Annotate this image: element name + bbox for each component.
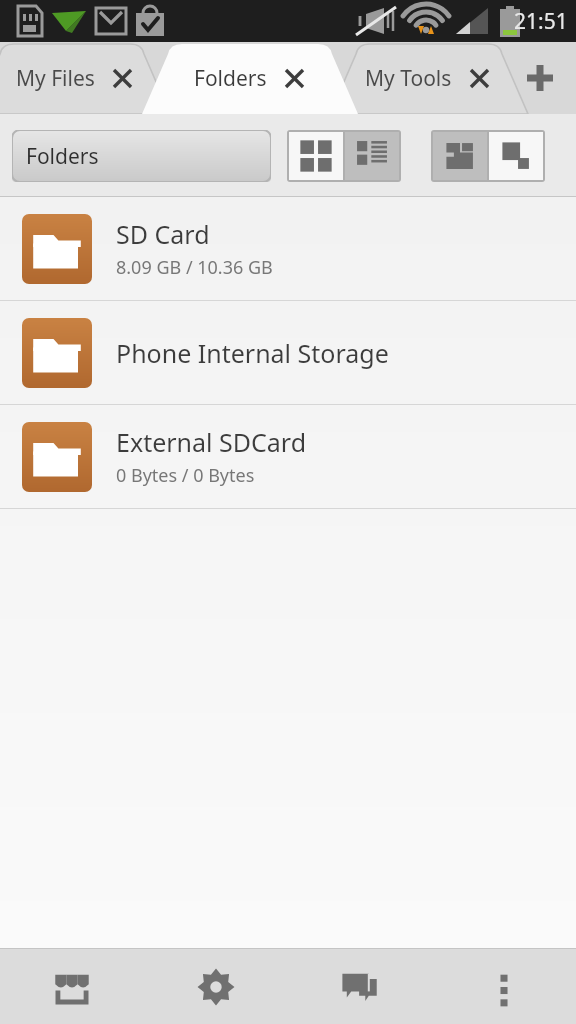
button[interactable]: List view xyxy=(345,132,399,180)
button[interactable]: Close My Files tab xyxy=(109,65,135,91)
button[interactable]: Folders xyxy=(12,130,271,182)
staticText: My Files xyxy=(16,64,95,93)
button[interactable]: Close My Tools tab xyxy=(466,65,492,91)
button[interactable]: Grid view xyxy=(289,132,343,180)
button[interactable]: Close Folders tab xyxy=(281,65,307,91)
button[interactable]: Messages xyxy=(288,949,432,1024)
staticText: Folders xyxy=(26,142,99,171)
button[interactable]: Large icons xyxy=(433,132,487,180)
staticText: 0 Bytes / 0 Bytes xyxy=(116,463,255,488)
button[interactable]: Store xyxy=(0,949,144,1024)
staticText: Folders xyxy=(194,64,267,93)
button[interactable]: New tab xyxy=(514,52,566,104)
staticText: SD Card xyxy=(116,217,210,251)
button[interactable]: Small icons xyxy=(489,132,543,180)
button[interactable]: External SDCard xyxy=(0,405,576,508)
staticText: Phone Internal Storage xyxy=(116,336,389,370)
button[interactable]: My Tools xyxy=(348,42,508,114)
button[interactable]: Phone Internal Storage xyxy=(0,301,576,404)
staticText: My Tools xyxy=(365,64,452,93)
staticText: 8.09 GB / 10.36 GB xyxy=(116,255,273,280)
button[interactable]: My Files xyxy=(0,42,150,114)
button[interactable]: More options xyxy=(432,949,576,1024)
button[interactable]: SD Card xyxy=(0,197,576,300)
staticText: 21:51 xyxy=(514,7,568,36)
button[interactable]: Settings xyxy=(144,949,288,1024)
staticText: External SDCard xyxy=(116,425,307,459)
button[interactable]: Folders xyxy=(160,42,340,114)
